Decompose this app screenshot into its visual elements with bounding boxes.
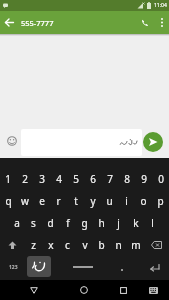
button[interactable]: j xyxy=(110,212,127,234)
button[interactable]: 4 xyxy=(50,168,67,190)
button[interactable] xyxy=(155,11,169,34)
button[interactable]: v xyxy=(76,234,93,256)
button[interactable] xyxy=(114,256,130,278)
staticText: 11:04 xyxy=(154,2,167,9)
staticText: z xyxy=(31,238,36,252)
button[interactable]: m xyxy=(127,234,144,256)
staticText: i xyxy=(125,194,128,208)
button[interactable] xyxy=(0,234,25,256)
staticText: 5 xyxy=(73,172,79,186)
staticText: 2 xyxy=(22,172,28,186)
staticText: u xyxy=(106,194,113,208)
staticText: 0 xyxy=(158,172,164,186)
staticText: p xyxy=(157,194,164,208)
button[interactable]: f xyxy=(59,212,76,234)
button[interactable] xyxy=(74,280,94,300)
staticText: r xyxy=(56,194,61,208)
button[interactable]: h xyxy=(93,212,110,234)
button[interactable] xyxy=(52,256,114,278)
staticText: l xyxy=(151,216,154,230)
button[interactable]: 5 xyxy=(67,168,84,190)
button[interactable]: 0 xyxy=(152,168,169,190)
staticText: y xyxy=(90,194,96,208)
staticText: g xyxy=(81,216,88,230)
button[interactable] xyxy=(21,129,142,156)
button[interactable] xyxy=(27,256,51,277)
button[interactable]: 6 xyxy=(84,168,101,190)
button[interactable]: x xyxy=(42,234,59,256)
button[interactable]: y xyxy=(84,190,101,212)
staticText: 9 xyxy=(141,172,147,186)
button[interactable] xyxy=(135,11,155,34)
staticText: m xyxy=(131,238,141,252)
staticText: 7 xyxy=(107,172,113,186)
button[interactable]: g xyxy=(76,212,93,234)
button[interactable] xyxy=(24,280,44,300)
button[interactable] xyxy=(3,132,20,149)
button[interactable]: q xyxy=(0,190,16,212)
staticText: c xyxy=(65,238,70,252)
button[interactable] xyxy=(144,234,169,256)
staticText: 4 xyxy=(56,172,62,186)
button[interactable]: d xyxy=(42,212,59,234)
staticText: w xyxy=(21,194,29,208)
button[interactable]: 1 xyxy=(0,168,16,190)
staticText: v xyxy=(82,238,88,252)
button[interactable] xyxy=(140,256,169,278)
button[interactable]: 3 xyxy=(33,168,50,190)
staticText: 8 xyxy=(124,172,130,186)
staticText: 1 xyxy=(5,172,11,186)
button[interactable]: r xyxy=(50,190,67,212)
staticText: f xyxy=(66,216,70,230)
staticText: q xyxy=(5,194,12,208)
button[interactable]: z xyxy=(25,234,42,256)
button[interactable]: 123 xyxy=(0,256,26,278)
button[interactable]: k xyxy=(127,212,144,234)
staticText: 6 xyxy=(90,172,96,186)
button[interactable]: w xyxy=(16,190,33,212)
button[interactable]: 7 xyxy=(101,168,118,190)
staticText: s xyxy=(31,216,36,230)
staticText: 555-7777 xyxy=(21,18,54,28)
staticText: k xyxy=(133,216,139,230)
staticText: n xyxy=(115,238,122,252)
staticText: h xyxy=(98,216,105,230)
staticText: e xyxy=(39,194,45,208)
staticText: x xyxy=(48,238,54,252)
button[interactable] xyxy=(113,280,133,300)
button[interactable]: 9 xyxy=(135,168,152,190)
button[interactable] xyxy=(143,132,163,152)
button[interactable]: l xyxy=(144,212,161,234)
staticText: 123 xyxy=(9,264,18,271)
button[interactable]: 8 xyxy=(118,168,135,190)
button[interactable]: u xyxy=(101,190,118,212)
staticText: a xyxy=(14,216,20,230)
button[interactable]: c xyxy=(59,234,76,256)
staticText: d xyxy=(47,216,54,230)
button[interactable] xyxy=(0,11,18,34)
staticText: j xyxy=(117,216,120,230)
staticText: o xyxy=(140,194,147,208)
button[interactable] xyxy=(144,280,162,300)
button[interactable]: n xyxy=(110,234,127,256)
button[interactable]: o xyxy=(135,190,152,212)
button[interactable]: s xyxy=(25,212,42,234)
button[interactable]: i xyxy=(118,190,135,212)
staticText: t xyxy=(74,194,78,208)
button[interactable]: p xyxy=(152,190,169,212)
staticText: b xyxy=(98,238,105,252)
button[interactable]: e xyxy=(33,190,50,212)
button[interactable]: 2 xyxy=(16,168,33,190)
button[interactable]: b xyxy=(93,234,110,256)
button[interactable]: a xyxy=(8,212,25,234)
staticText: 3 xyxy=(39,172,45,186)
button[interactable]: t xyxy=(67,190,84,212)
